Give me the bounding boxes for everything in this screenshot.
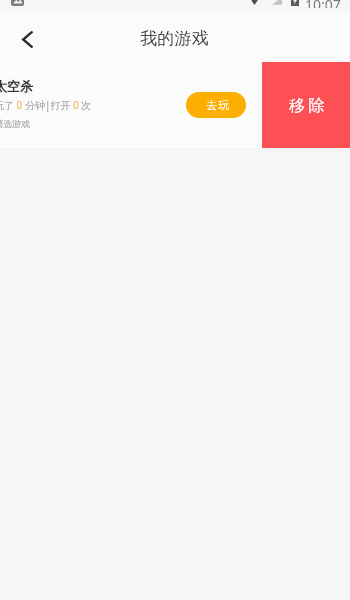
button[interactable]: Back	[7, 18, 47, 58]
button[interactable]: 太空杀	[0, 62, 262, 148]
staticText: 太空杀	[0, 78, 33, 94]
staticText: 我的游戏	[140, 28, 210, 49]
button[interactable]: 移除	[262, 62, 350, 148]
staticText: 玩了 0 分钟|打开 0 次	[0, 98, 92, 112]
staticText: 去玩	[206, 98, 231, 112]
staticText: 移除	[289, 96, 329, 116]
staticText: 10:07	[305, 0, 341, 8]
button[interactable]: 去玩	[186, 92, 246, 118]
staticText: 精选游戏	[0, 118, 30, 129]
